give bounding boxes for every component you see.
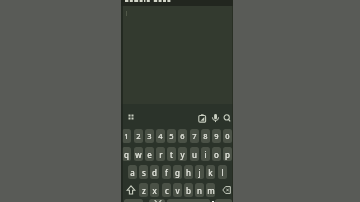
button[interactable]: c: [162, 183, 171, 197]
button[interactable]: h: [184, 165, 193, 179]
button[interactable]: t: [167, 147, 176, 161]
staticText: 7: [192, 131, 197, 141]
button[interactable]: [121, 104, 233, 127]
staticText: j: [198, 167, 201, 178]
staticText: l: [221, 167, 224, 178]
staticText: z: [142, 185, 146, 196]
button[interactable]: f: [162, 165, 171, 179]
staticText: n: [197, 185, 202, 196]
staticText: d: [152, 167, 157, 178]
staticText: 2: [136, 131, 141, 141]
staticText: k: [208, 167, 213, 178]
button[interactable]: b: [184, 183, 193, 197]
staticText: f: [165, 167, 168, 178]
button[interactable]: [124, 199, 143, 202]
staticText: v: [175, 185, 180, 196]
staticText: 6: [180, 131, 185, 141]
staticText: i: [204, 149, 207, 160]
staticText: c: [165, 185, 169, 196]
staticText: h: [186, 167, 191, 178]
button[interactable]: 5: [167, 129, 176, 143]
button[interactable]: 0: [223, 129, 232, 143]
button[interactable]: [167, 199, 210, 202]
button[interactable]: [215, 199, 232, 202]
button[interactable]: k: [206, 165, 215, 179]
button[interactable]: o: [212, 147, 221, 161]
staticText: 9: [214, 131, 219, 141]
button[interactable]: n: [195, 183, 204, 197]
button[interactable]: p: [223, 147, 232, 161]
button[interactable]: 1: [122, 129, 131, 143]
button[interactable]: u: [190, 147, 199, 161]
button[interactable]: g: [173, 165, 182, 179]
staticText: y: [180, 149, 185, 160]
button[interactable]: 8: [201, 129, 210, 143]
button[interactable]: m: [206, 183, 215, 197]
button[interactable]: s: [139, 165, 148, 179]
staticText: q: [124, 149, 129, 160]
staticText: a: [130, 167, 135, 178]
staticText: 8: [203, 131, 208, 141]
button[interactable]: z: [139, 183, 148, 197]
button[interactable]: j: [195, 165, 204, 179]
button[interactable]: l: [218, 165, 227, 179]
button[interactable]: x: [150, 183, 159, 197]
button[interactable]: 7: [190, 129, 199, 143]
button[interactable]: d: [150, 165, 159, 179]
staticText: 4: [158, 131, 163, 141]
button[interactable]: y: [178, 147, 187, 161]
button[interactable]: 4: [156, 129, 165, 143]
button[interactable]: 3: [145, 129, 154, 143]
button[interactable]: 2: [134, 129, 143, 143]
staticText: p: [225, 149, 230, 160]
button[interactable]: 6: [178, 129, 187, 143]
staticText: 5: [169, 131, 174, 141]
staticText: 1: [124, 131, 129, 141]
staticText: m: [207, 185, 215, 196]
button[interactable]: v: [173, 183, 182, 197]
button[interactable]: r: [156, 147, 165, 161]
button[interactable]: q: [122, 147, 131, 161]
staticText: 0: [225, 131, 230, 141]
staticText: e: [147, 149, 152, 160]
button[interactable]: a: [128, 165, 137, 179]
button[interactable]: e: [145, 147, 154, 161]
staticText: r: [159, 149, 163, 160]
staticText: x: [152, 185, 157, 196]
button[interactable]: [121, 183, 233, 197]
staticText: 3: [147, 131, 152, 141]
button[interactable]: w: [134, 147, 143, 161]
button[interactable]: 9: [212, 129, 221, 143]
staticText: o: [214, 149, 219, 160]
staticText: u: [192, 149, 197, 160]
staticText: w: [135, 149, 142, 160]
button[interactable]: i: [201, 147, 210, 161]
staticText: g: [175, 167, 180, 178]
staticText: b: [186, 185, 191, 196]
staticText: s: [142, 167, 146, 178]
button[interactable]: [149, 199, 165, 202]
staticText: t: [170, 149, 173, 160]
